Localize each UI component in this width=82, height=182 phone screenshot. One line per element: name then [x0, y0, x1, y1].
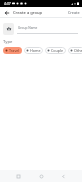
staticText: Create	[68, 10, 80, 15]
staticText: Create a group	[13, 10, 43, 16]
button[interactable]: Other	[68, 47, 82, 54]
button[interactable]: Recents	[12, 170, 24, 182]
staticText: Home	[30, 48, 41, 53]
staticText: Type	[3, 39, 13, 45]
button[interactable]: Back	[57, 170, 69, 182]
staticText: Group Name	[18, 26, 38, 30]
staticText: 4:37	[4, 1, 11, 6]
button[interactable]: Back	[0, 7, 13, 18]
button[interactable]: Create	[66, 7, 82, 18]
button[interactable]: Add group photo	[3, 23, 14, 35]
button[interactable]: Couple	[45, 47, 66, 54]
staticText: Travel	[9, 48, 20, 53]
button[interactable]: Home	[24, 47, 43, 54]
button[interactable]: Travel	[3, 47, 22, 54]
staticText: Couple	[51, 48, 64, 53]
button[interactable]: Group Name	[17, 24, 78, 34]
button[interactable]: Home	[35, 170, 47, 182]
staticText: Other	[74, 48, 82, 53]
